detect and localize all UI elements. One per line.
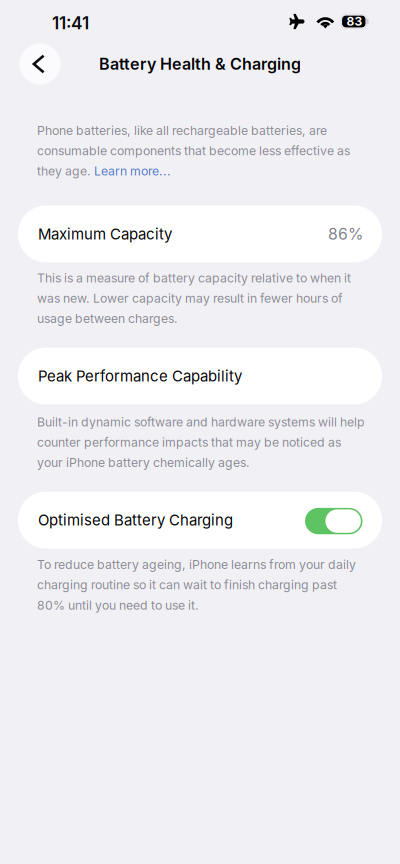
staticText: To reduce battery ageing, iPhone learns … — [37, 557, 356, 613]
staticText: 11:41 — [52, 13, 89, 33]
staticText: Optimised Battery Charging — [38, 511, 233, 529]
button[interactable]: Maximum Capacity — [0, 205, 400, 262]
staticText: Phone batteries, like all rechargeable b… — [37, 123, 327, 138]
staticText: 83 — [347, 14, 363, 29]
button[interactable]: Learn more... — [94, 164, 171, 178]
staticText: Built-in dynamic software and hardware s… — [37, 415, 365, 470]
button[interactable]: Peak Performance Capability — [18, 348, 382, 405]
staticText: consumable components that become less e… — [37, 143, 350, 158]
button[interactable]: Maximum Capacity — [18, 205, 382, 262]
staticText: Maximum Capacity — [38, 225, 172, 243]
button[interactable]: Back — [19, 43, 60, 84]
button[interactable]: Peak Performance Capability — [0, 348, 400, 405]
staticText: This is a measure of battery capacity re… — [37, 270, 351, 326]
button[interactable]: Optimised Battery Charging — [18, 492, 382, 549]
button[interactable]: Optimised Battery Charging — [0, 492, 400, 549]
staticText: Peak Performance Capability — [38, 367, 242, 385]
staticText: Learn more... — [94, 164, 171, 178]
staticText: 86% — [328, 224, 363, 243]
staticText: they age. — [37, 164, 94, 178]
staticText: Battery Health & Charging — [99, 54, 301, 74]
